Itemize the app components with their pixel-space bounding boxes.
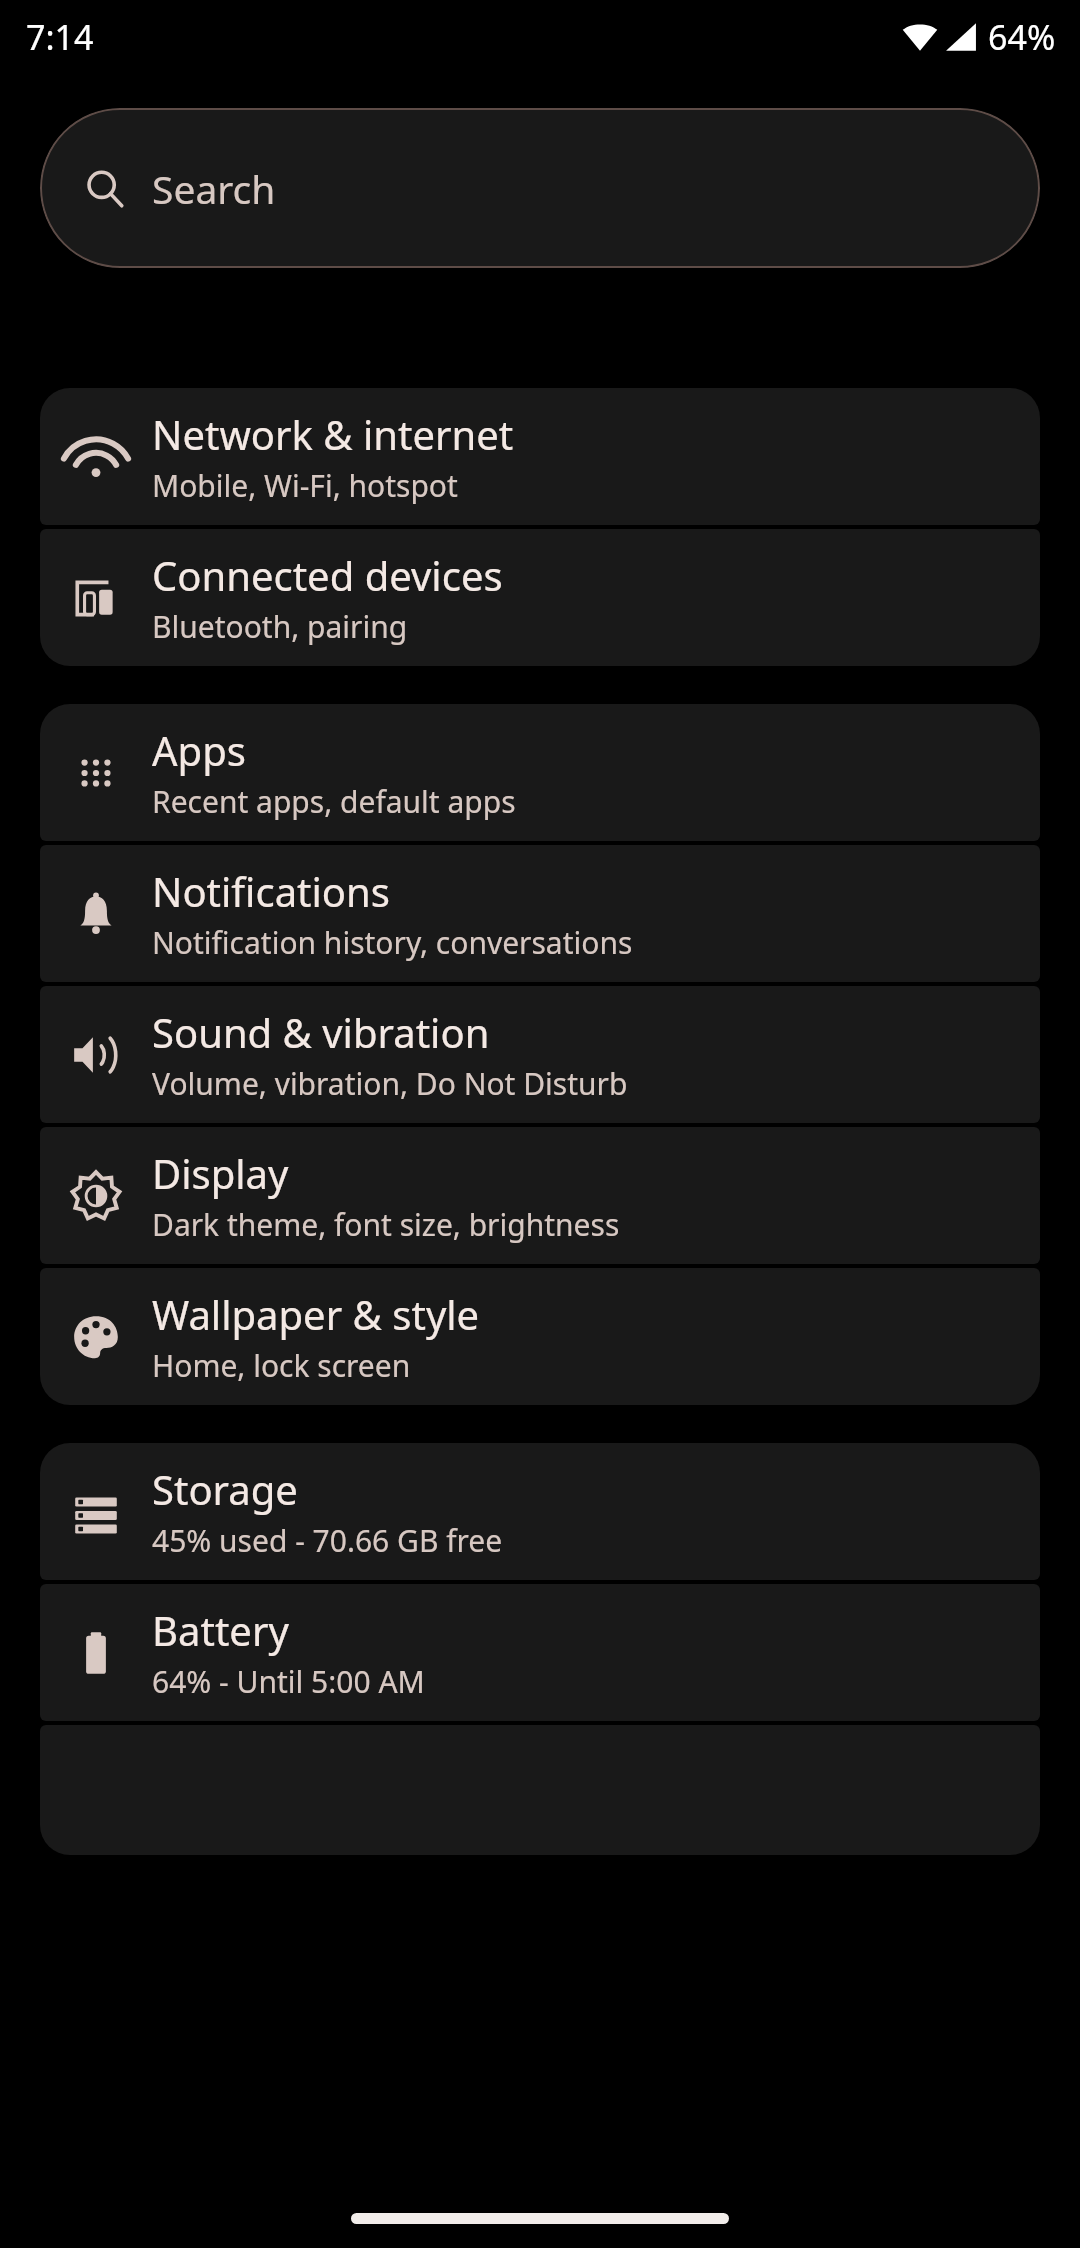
button[interactable]: Apps <box>40 704 1040 841</box>
staticText: Connected devices <box>152 548 503 602</box>
staticText: Sound & vibration <box>152 1005 490 1059</box>
staticText: Dark theme, font size, brightness <box>152 1204 620 1245</box>
staticText: 45% used - 70.66 GB free <box>152 1520 503 1561</box>
staticText: 64% - Until 5:00 AM <box>152 1661 425 1702</box>
button[interactable]: Storage <box>40 1443 1040 1580</box>
staticText: Display <box>152 1146 289 1200</box>
staticText: Home, lock screen <box>152 1345 411 1386</box>
staticText: Notification history, conversations <box>152 922 633 963</box>
other: Signal <box>944 22 978 52</box>
staticText: Notifications <box>152 864 390 918</box>
staticText: Battery <box>152 1603 289 1657</box>
button[interactable]: Display <box>40 1127 1040 1264</box>
button[interactable]: Wallpaper & style <box>40 1268 1040 1405</box>
staticText: Apps <box>152 723 246 777</box>
staticText: Search <box>152 162 276 215</box>
button[interactable]: Notifications <box>40 845 1040 982</box>
button[interactable]: Battery <box>40 1584 1040 1721</box>
staticText: Recent apps, default apps <box>152 781 516 822</box>
button[interactable]: Network & internet <box>40 388 1040 525</box>
staticText: Storage <box>152 1462 298 1516</box>
staticText: Wallpaper & style <box>152 1287 480 1341</box>
button[interactable]: Search <box>40 108 1040 268</box>
other: Wi-Fi <box>902 22 938 52</box>
staticText: Volume, vibration, Do Not Disturb <box>152 1063 628 1104</box>
staticText: Mobile, Wi-Fi, hotspot <box>152 465 458 506</box>
staticText: 64% <box>988 14 1056 60</box>
staticText: Network & internet <box>152 407 514 461</box>
staticText: 7:14 <box>26 14 94 60</box>
button[interactable]: Sound & vibration <box>40 986 1040 1123</box>
button[interactable]: Connected devices <box>40 529 1040 666</box>
staticText: Bluetooth, pairing <box>152 606 408 647</box>
